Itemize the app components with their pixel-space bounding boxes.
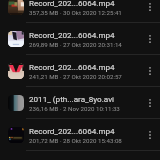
button[interactable]: Record_202...6064.mp4 bbox=[0, 0, 160, 22]
button[interactable]: More options bbox=[140, 93, 160, 113]
staticText: 241,21 MB · 27 Okt 2020 20:02:57 bbox=[29, 73, 122, 80]
button[interactable]: More options bbox=[140, 0, 160, 17]
staticText: 201,72 MB · 28 Okt 2020 15:43:08 bbox=[29, 137, 122, 144]
staticText: 236,16 MB · 2 Nov 2020 10:11:33 bbox=[29, 105, 120, 112]
staticText: Record_202...6064.mp4 bbox=[29, 62, 115, 71]
staticText: 357,35 MB · 30 Okt 2020 12:25:41 bbox=[29, 9, 122, 16]
button[interactable]: 2011_ (pth...ara_8yo.avi bbox=[0, 87, 160, 118]
button[interactable]: Record_202...6064.mp4 bbox=[0, 55, 160, 86]
staticText: 2011_ (pth...ara_8yo.avi bbox=[29, 94, 115, 103]
button[interactable]: More options bbox=[140, 29, 160, 49]
staticText: 269,89 MB · 27 Okt 2020 20:31:14 bbox=[29, 41, 122, 48]
button[interactable]: Record_202...6064.mp4 bbox=[0, 119, 160, 150]
button[interactable]: Record_202...6064.mp4 bbox=[0, 23, 160, 54]
staticText: Record_202...6064.mp4 bbox=[29, 30, 115, 39]
button[interactable]: More options bbox=[140, 61, 160, 81]
staticText: Record_202...6064.mp4 bbox=[29, 126, 115, 135]
staticText: Record_202...6064.mp4 bbox=[29, 0, 115, 7]
button[interactable]: More options bbox=[140, 125, 160, 145]
